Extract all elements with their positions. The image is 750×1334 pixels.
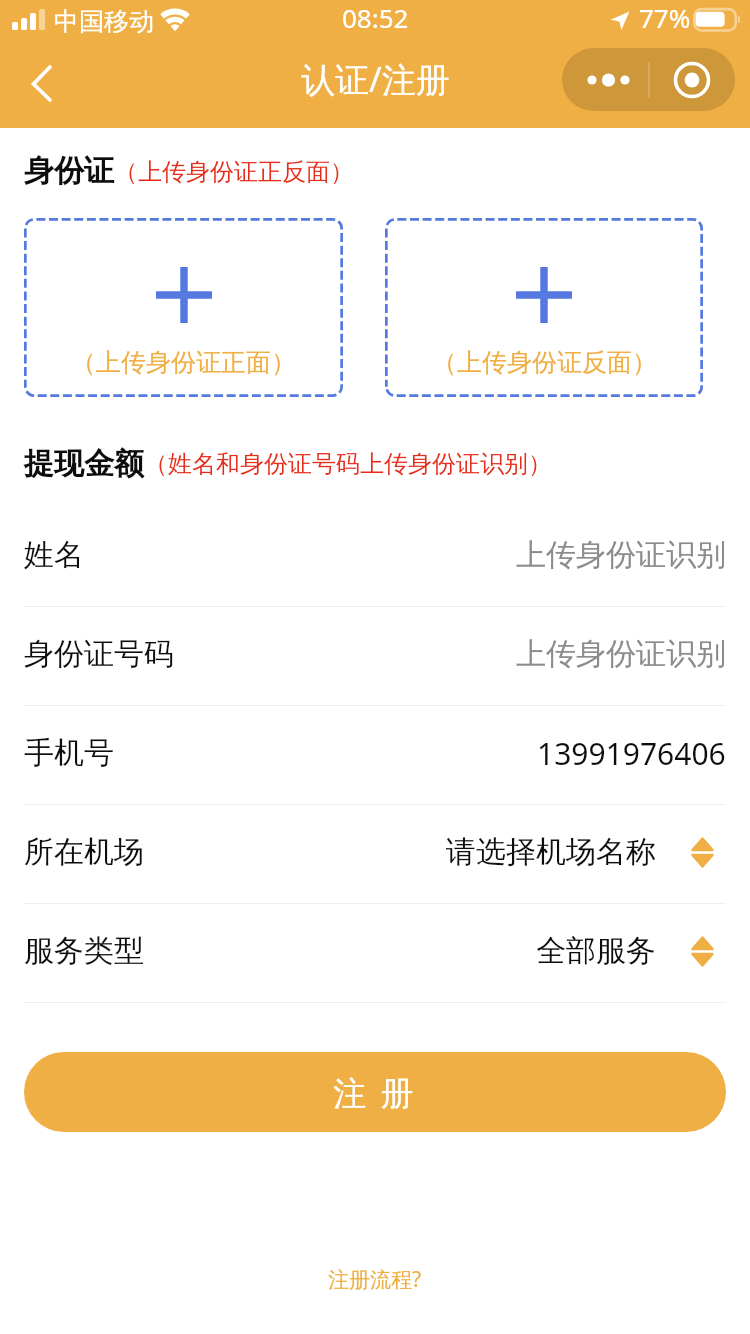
staticText: 提现金额: [24, 445, 144, 483]
staticText: 13991976406: [537, 733, 726, 774]
button[interactable]: 服务类型: [0, 904, 750, 1003]
staticText: （上传身份证正面）: [71, 347, 296, 378]
staticText: 身份证号码: [24, 635, 174, 673]
staticText: 姓名: [24, 536, 84, 574]
button[interactable]: （上传身份证正面）: [24, 218, 343, 397]
button[interactable]: 手机号: [0, 706, 750, 805]
staticText: （上传身份证反面）: [432, 347, 657, 378]
staticText: （上传身份证正反面）: [114, 157, 354, 187]
button[interactable]: 注册流程?: [312, 1255, 438, 1304]
button[interactable]: Close mini program: [649, 48, 735, 111]
staticText: 注册流程?: [328, 1265, 422, 1294]
button[interactable]: 姓名: [0, 508, 750, 607]
staticText: （姓名和身份证号码上传身份证识别）: [144, 449, 552, 479]
staticText: 77%: [639, 0, 691, 35]
staticText: 手机号: [24, 734, 114, 772]
staticText: 服务类型: [24, 932, 144, 970]
button[interactable]: 注 册: [24, 1052, 726, 1132]
button[interactable]: 所在机场: [0, 805, 750, 904]
button[interactable]: 身份证号码: [0, 607, 750, 706]
staticText: 08:52: [342, 0, 409, 35]
button[interactable]: More options: [562, 48, 648, 111]
button[interactable]: （上传身份证反面）: [385, 218, 703, 397]
button[interactable]: Back: [10, 52, 58, 100]
staticText: 上传身份证识别: [516, 536, 726, 574]
staticText: 全部服务: [536, 932, 656, 970]
staticText: 身份证: [24, 152, 114, 190]
staticText: 注 册: [333, 1070, 417, 1115]
staticText: 中国移动: [54, 6, 154, 37]
staticText: 上传身份证识别: [516, 635, 726, 673]
staticText: 认证/注册: [301, 56, 450, 102]
staticText: 所在机场: [24, 833, 144, 871]
staticText: 请选择机场名称: [446, 833, 656, 871]
